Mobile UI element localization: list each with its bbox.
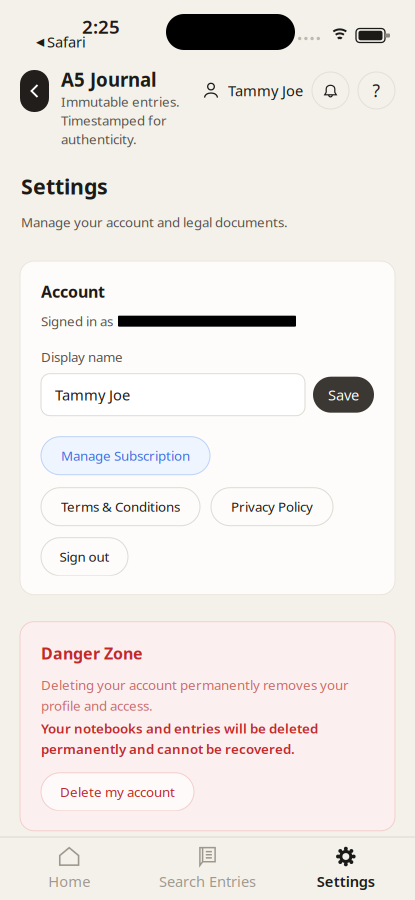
staticText: ◀ bbox=[36, 36, 44, 48]
staticText: Home bbox=[48, 871, 90, 891]
staticText: Danger Zone bbox=[41, 643, 143, 664]
staticText: Your notebooks and entries will be delet… bbox=[41, 719, 318, 737]
staticText: Tammy Joe bbox=[55, 385, 130, 404]
staticText: Save bbox=[328, 385, 359, 404]
button[interactable]: Home bbox=[0, 836, 138, 900]
staticText: Search Entries bbox=[159, 871, 256, 891]
button[interactable]: Manage Subscription bbox=[41, 437, 210, 475]
button[interactable]: Sign out bbox=[41, 538, 128, 576]
button[interactable]: Back bbox=[20, 70, 49, 112]
staticText: Timestamped for bbox=[61, 111, 167, 129]
staticText: 2:25 bbox=[82, 14, 120, 39]
staticText: Deleting your account permanently remove… bbox=[41, 676, 349, 694]
button[interactable]: Search Entries bbox=[138, 836, 277, 900]
staticText: permanently and cannot be recovered. bbox=[41, 740, 295, 758]
button[interactable]: Help bbox=[358, 72, 395, 109]
staticText: authenticity. bbox=[61, 130, 137, 148]
staticText: profile and access. bbox=[41, 697, 153, 714]
staticText: Sign out bbox=[59, 548, 109, 565]
staticText: Manage Subscription bbox=[61, 447, 190, 464]
button[interactable]: Terms & Conditions bbox=[41, 488, 200, 526]
button[interactable]: Notifications bbox=[312, 72, 349, 109]
staticText: ? bbox=[372, 79, 380, 102]
staticText: Manage your account and legal documents. bbox=[21, 213, 288, 231]
staticText: Signed in as bbox=[41, 312, 113, 330]
button[interactable]: Settings bbox=[277, 836, 415, 900]
staticText: Immutable entries. bbox=[61, 93, 180, 110]
staticText: Tammy Joe bbox=[228, 81, 303, 100]
staticText: Safari bbox=[47, 32, 86, 51]
button[interactable]: Privacy Policy bbox=[211, 488, 333, 526]
staticText: Settings bbox=[317, 871, 375, 891]
staticText: Privacy Policy bbox=[231, 498, 313, 515]
staticText: Delete my account bbox=[60, 783, 175, 801]
button[interactable]: Save bbox=[313, 377, 374, 413]
button[interactable]: Delete my account bbox=[41, 773, 194, 811]
staticText: A5 Journal bbox=[61, 67, 157, 92]
staticText: Display name bbox=[41, 348, 123, 366]
staticText: Terms & Conditions bbox=[61, 498, 180, 515]
staticText: Account bbox=[41, 281, 105, 302]
staticText: Settings bbox=[21, 172, 108, 200]
